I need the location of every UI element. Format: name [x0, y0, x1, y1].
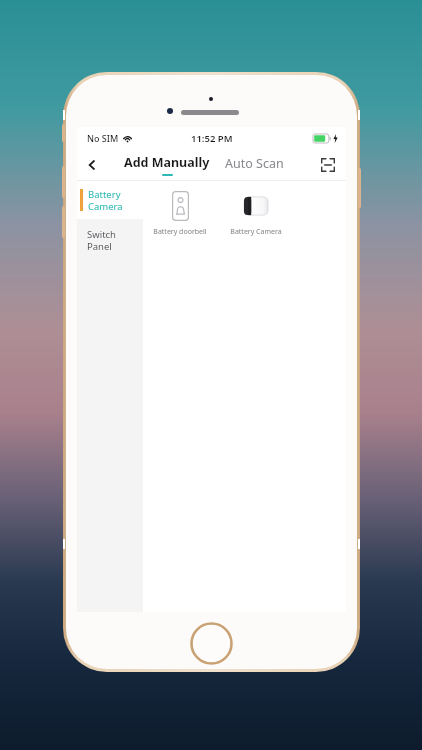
button[interactable]: Battery Camera: [77, 181, 143, 219]
staticText: Switch Panel: [87, 228, 116, 253]
button[interactable]: Battery Camera: [225, 189, 287, 237]
button[interactable]: Battery doorbell: [149, 189, 211, 237]
staticText: Battery Camera: [230, 227, 282, 237]
staticText: Battery Camera: [88, 188, 123, 213]
staticText: 11:52 PM: [191, 132, 233, 145]
button[interactable]: Home: [190, 622, 233, 665]
staticText: Auto Scan: [225, 155, 284, 172]
staticText: Battery doorbell: [153, 227, 207, 237]
staticText: No SIM: [87, 132, 119, 144]
staticText: Add Manually: [124, 154, 210, 171]
button[interactable]: Add Manually: [122, 154, 212, 176]
button[interactable]: Auto Scan: [223, 157, 286, 174]
button[interactable]: Back: [77, 150, 107, 180]
button[interactable]: Scan QR code: [317, 154, 339, 176]
button[interactable]: Switch Panel: [77, 219, 143, 261]
